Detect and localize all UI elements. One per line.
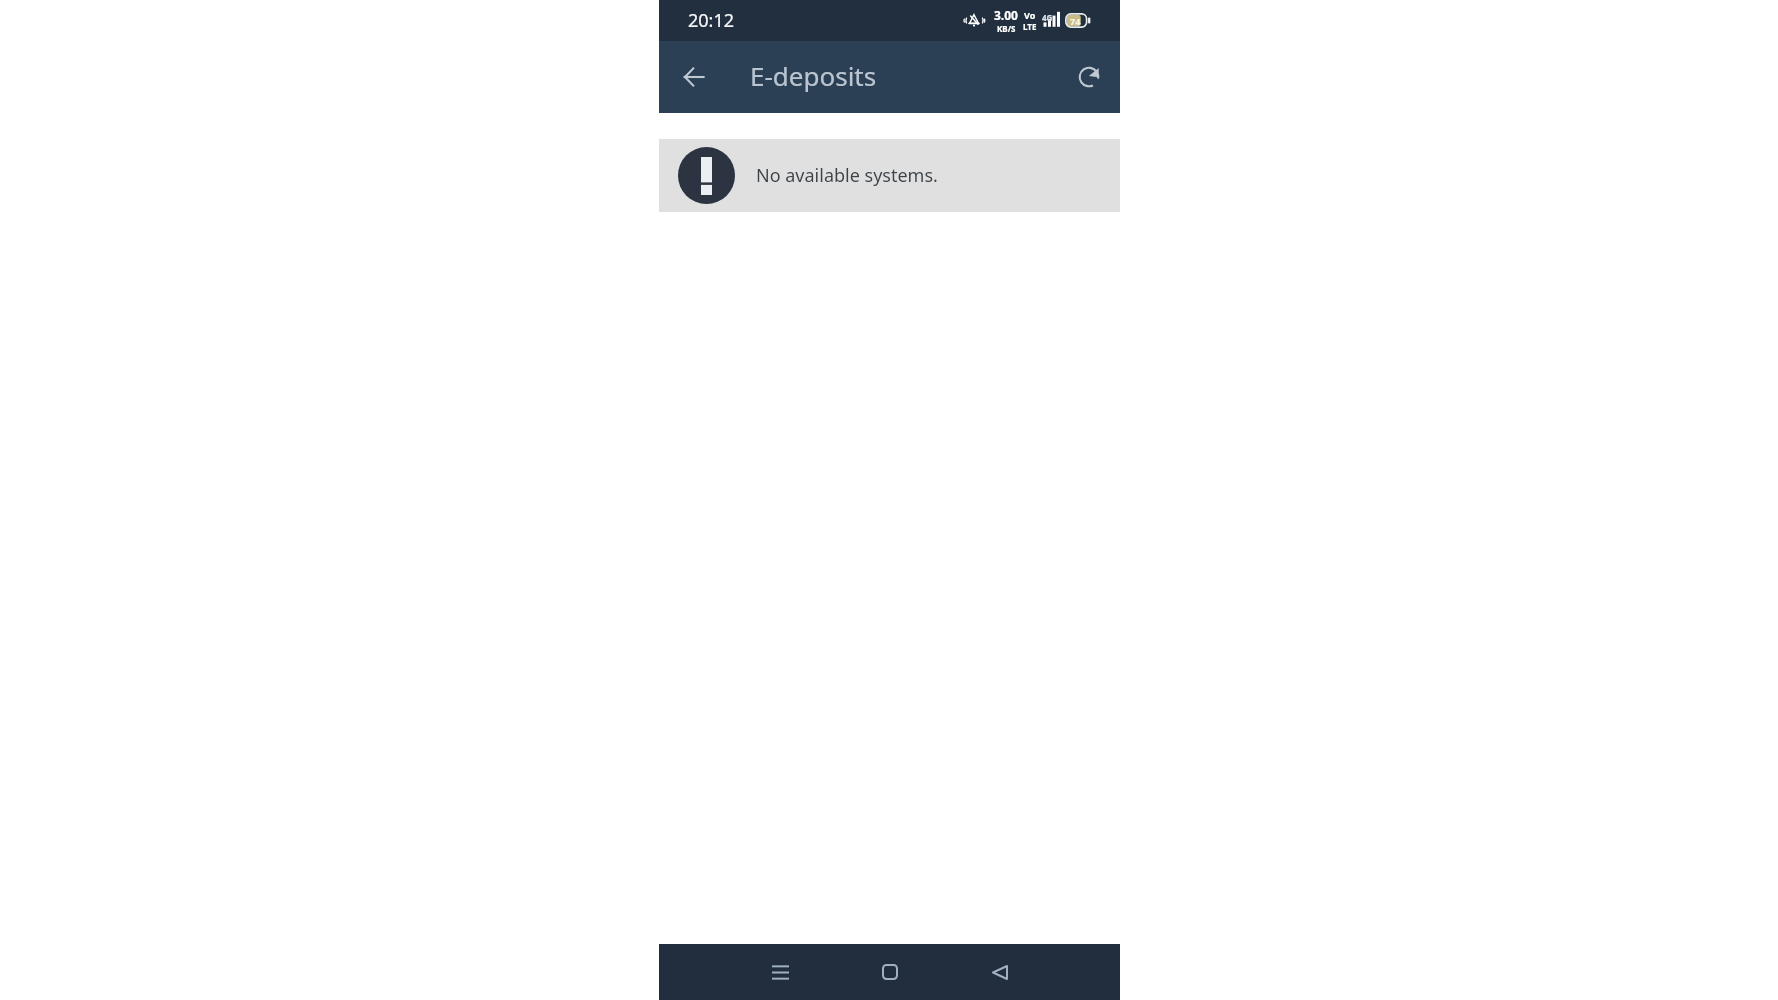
staticText: LTE <box>1023 21 1037 32</box>
staticText: 74 <box>1070 15 1081 27</box>
staticText: KB/S <box>997 23 1016 34</box>
button[interactable]: Refresh <box>1065 53 1113 101</box>
button[interactable]: No available systems. <box>659 139 1120 212</box>
staticText: 20:12 <box>688 8 735 33</box>
staticText: E-deposits <box>750 58 877 93</box>
button[interactable]: Navigate up <box>670 53 718 101</box>
button[interactable]: Back <box>945 944 1055 1000</box>
staticText: 4G <box>1042 12 1053 23</box>
staticText: No available systems. <box>756 163 938 188</box>
button[interactable]: Recent apps <box>725 944 835 1000</box>
button[interactable]: Home <box>835 944 945 1000</box>
staticText: Vo <box>1024 9 1036 21</box>
staticText: 3.00 <box>994 7 1018 23</box>
